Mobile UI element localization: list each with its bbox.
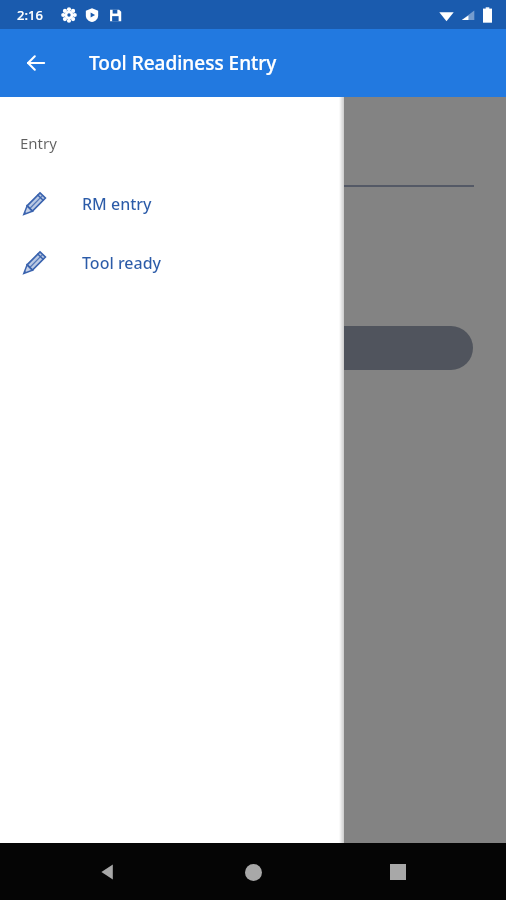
- button[interactable]: [0, 97, 506, 843]
- staticText: Entry: [20, 133, 57, 153]
- button[interactable]: Back: [12, 39, 60, 87]
- staticText: Tool ready: [82, 252, 162, 274]
- staticText: Tool Readiness Entry: [89, 50, 277, 76]
- button[interactable]: RM entry: [0, 183, 344, 225]
- button[interactable]: Recent apps: [374, 848, 422, 896]
- button[interactable]: Home: [229, 848, 277, 896]
- staticText: RM entry: [82, 193, 152, 215]
- button[interactable]: Tool ready: [0, 242, 344, 284]
- button[interactable]: Back: [84, 848, 132, 896]
- staticText: 2:16: [17, 6, 43, 24]
- button[interactable]: [140, 326, 473, 370]
